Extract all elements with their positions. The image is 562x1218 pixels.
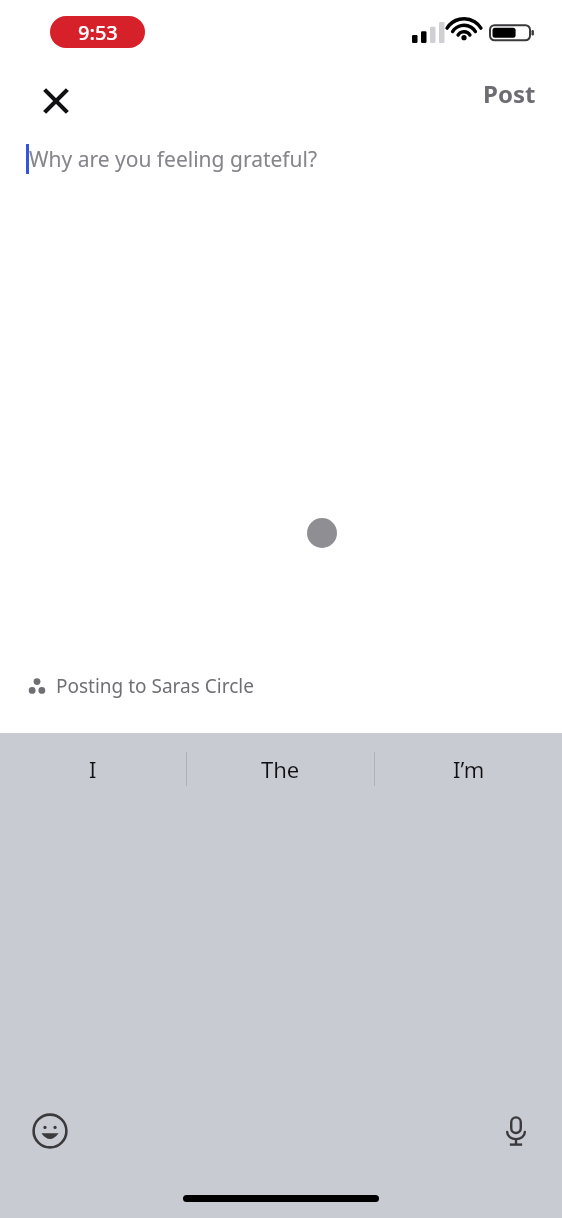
staticText: I’m bbox=[453, 754, 485, 784]
button[interactable]: Post bbox=[477, 71, 542, 116]
button[interactable]: Posting to Saras Circle bbox=[22, 669, 258, 703]
button[interactable]: Dictation bbox=[492, 1107, 540, 1155]
button[interactable]: The bbox=[187, 733, 374, 805]
staticText: Post bbox=[483, 77, 536, 110]
staticText: I bbox=[89, 754, 97, 784]
button[interactable]: I’m bbox=[375, 733, 562, 805]
staticText: Posting to Saras Circle bbox=[56, 673, 254, 699]
button[interactable]: Emoji bbox=[26, 1107, 74, 1155]
staticText: Why are you feeling grateful? bbox=[29, 145, 318, 174]
staticText: The bbox=[261, 754, 300, 784]
button[interactable]: Close bbox=[33, 78, 79, 124]
staticText: 9:53 bbox=[78, 19, 118, 46]
button[interactable]: I bbox=[0, 733, 186, 805]
